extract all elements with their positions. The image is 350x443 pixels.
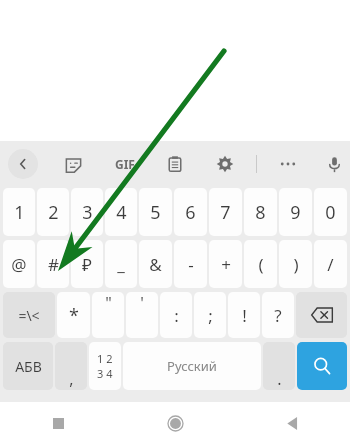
staticText: ' [140,292,144,314]
button[interactable]: Voice input [321,151,347,177]
button[interactable]: * [57,292,90,338]
button[interactable]: + [209,240,242,288]
button[interactable]: # [37,240,69,288]
staticText: GIF [115,156,135,172]
button[interactable]: : [160,292,192,338]
button[interactable]: Settings [212,151,238,177]
button[interactable]: 2 [37,188,69,236]
staticText: АБВ [15,357,42,376]
button[interactable]: , [55,342,87,390]
button[interactable]: 9 [279,188,312,236]
staticText: ! [242,304,247,327]
button[interactable]: 0 [314,188,347,236]
button[interactable]: 5 [139,188,172,236]
button[interactable]: ; [194,292,226,338]
staticText: , [69,368,74,390]
button[interactable]: / [314,240,347,288]
staticText: 5 [150,200,161,225]
button[interactable]: Русский [123,342,261,390]
button[interactable]: Home [160,408,190,438]
button[interactable]: 8 [244,188,277,236]
staticText: 6 [185,200,196,225]
staticText: 9 [290,200,301,225]
staticText: : [174,304,179,327]
staticText: 0 [325,200,336,225]
staticText: 2 [48,200,59,225]
button[interactable]: ? [262,292,294,338]
staticText: . [277,368,282,390]
staticText: / [327,253,334,276]
staticText: # [48,253,59,276]
button[interactable]: & [139,240,172,288]
button[interactable]: Search [297,342,347,390]
staticText: 8 [255,200,266,225]
staticText: ) [293,253,299,276]
button[interactable]: 3 [71,188,103,236]
staticText: ? [274,304,282,327]
staticText: 7 [220,200,231,225]
staticText: - [188,253,194,276]
button[interactable]: Back [277,408,307,438]
staticText: ₽ [82,253,92,276]
button[interactable]: ' [126,292,158,338]
staticText: + [221,253,231,276]
button[interactable]: " [92,292,124,338]
staticText: Русский [167,357,217,375]
staticText: ( [258,253,264,276]
staticText: 3 4 [97,366,113,381]
button[interactable]: GIF [110,151,140,177]
staticText: =\< [18,306,40,325]
button[interactable]: More options [275,151,301,177]
button[interactable]: ! [228,292,260,338]
button[interactable]: 1 2 [89,342,121,390]
button[interactable]: @ [3,240,35,288]
button[interactable]: Recents [43,408,73,438]
staticText: 3 [82,200,93,225]
button[interactable]: ) [279,240,312,288]
staticText: 1 [14,200,25,225]
button[interactable]: _ [105,240,137,288]
staticText: * [69,303,79,328]
button[interactable]: 7 [209,188,242,236]
staticText: & [149,253,162,276]
staticText: ; [208,304,213,327]
button[interactable]: 6 [174,188,207,236]
staticText: _ [117,253,125,276]
button[interactable]: 4 [105,188,137,236]
button[interactable]: Stickers [60,151,86,177]
staticText: @ [11,253,27,276]
staticText: " [105,292,112,314]
button[interactable]: . [263,342,295,390]
button[interactable]: - [174,240,207,288]
button[interactable]: =\< [3,292,55,338]
button[interactable]: ( [244,240,277,288]
button[interactable]: Back [8,149,38,179]
button[interactable]: Backspace [296,292,347,338]
staticText: 1 2 [97,351,113,366]
button[interactable]: 1 [3,188,35,236]
staticText: 4 [116,200,127,225]
button[interactable]: АБВ [3,342,53,390]
button[interactable]: ₽ [71,240,103,288]
button[interactable]: Clipboard [162,151,188,177]
